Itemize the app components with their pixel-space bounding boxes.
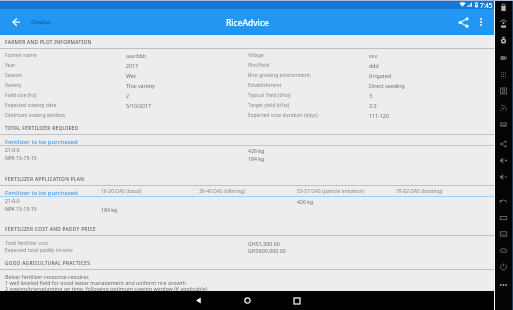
staticText: FARMER AND PLOT INFORMATION xyxy=(5,39,92,46)
staticText: Expected crop duration (days) xyxy=(248,112,318,119)
staticText: 3 xyxy=(369,92,373,99)
staticText: Farmer name xyxy=(5,52,37,59)
button[interactable]: Back xyxy=(173,291,223,310)
staticText: Establishment xyxy=(248,82,282,89)
staticText: 184 kg xyxy=(248,155,265,162)
staticText: FERTILIZER APPLICATION PLAN xyxy=(5,176,85,183)
staticText: Total fertilizer cost xyxy=(5,240,49,247)
staticText: TOTAL FERTILIZER REQUIRED xyxy=(5,125,79,132)
staticText: Year xyxy=(5,62,16,69)
staticText: 2017 xyxy=(126,62,139,69)
staticText: GOOD AGRICULTURAL PRACTICES xyxy=(5,260,91,267)
staticText: Typical Yield (t/ha) xyxy=(248,92,291,99)
staticText: Rice growing environment: xyxy=(248,72,312,79)
staticText: 53-57 DAS (panicle initiation) xyxy=(297,188,364,195)
staticText: aaa bbb xyxy=(126,52,147,59)
staticText: Irrigated xyxy=(369,72,391,79)
staticText: Village xyxy=(248,52,264,59)
staticText: Plot/field xyxy=(248,62,270,69)
staticText: 21-0-0 xyxy=(5,198,20,205)
button[interactable]: Share xyxy=(450,9,476,35)
staticText: Output xyxy=(31,18,51,26)
staticText: 111-120 xyxy=(369,112,389,119)
staticText: 184 kg xyxy=(101,206,118,213)
staticText: Expected sowing date xyxy=(5,102,57,109)
staticText: Fertilizer to be purchased xyxy=(5,137,78,145)
staticText: 426 kg xyxy=(248,147,265,154)
staticText: Fertilizer to be purchased xyxy=(5,188,78,196)
staticText: Better fertilizer response requires xyxy=(5,273,89,279)
staticText: 7:45 xyxy=(480,1,493,9)
staticText: NPK 15-15-15 xyxy=(5,206,37,213)
staticText: 426 kg xyxy=(297,198,314,205)
staticText: 3.0 xyxy=(369,102,377,109)
staticText: NPK 15-15-15 xyxy=(5,155,37,162)
staticText: 36-40 DAS (tillering) xyxy=(199,188,246,195)
staticText: ddd xyxy=(369,62,379,69)
staticText: Thai variety xyxy=(126,82,155,89)
staticText: 2 xyxy=(126,92,130,99)
staticText: GHS1,500.60 xyxy=(248,240,280,247)
staticText: RiceAdvice xyxy=(226,17,269,28)
staticText: Season xyxy=(5,72,22,79)
button[interactable]: Back xyxy=(0,9,28,35)
staticText: Variety xyxy=(5,82,22,89)
staticText: 21-0-0 xyxy=(5,147,20,154)
staticText: 2 sowing/transplanting on time, followin… xyxy=(5,285,208,291)
staticText: GHS600,000.00 xyxy=(248,247,286,254)
button[interactable]: Home xyxy=(223,291,272,310)
staticText: Wet xyxy=(126,72,136,79)
button[interactable]: Fertilizer to be purchased xyxy=(0,187,494,196)
staticText: 1 well leveled field for good water mana… xyxy=(5,279,186,285)
staticText: 16-20 DAS (basal) xyxy=(101,188,142,195)
staticText: Expected total paddy income xyxy=(5,247,73,254)
button[interactable]: More options xyxy=(468,9,493,35)
staticText: Optimum sowing window xyxy=(5,112,66,119)
staticText: 78-82 DAS (booting) xyxy=(396,188,443,195)
staticText: FERTILIZER COST AND PADDY PRICE xyxy=(5,226,97,233)
staticText: vvv xyxy=(369,52,378,59)
button[interactable]: Fertilizer to be purchased xyxy=(0,136,494,145)
staticText: 5/10/2017 xyxy=(126,102,152,109)
staticText: Direct seeding xyxy=(369,82,405,89)
staticText: Target yield (t/ha) xyxy=(248,102,290,109)
staticText: Field size (ha) xyxy=(5,92,37,99)
button[interactable]: Recents xyxy=(272,291,321,310)
